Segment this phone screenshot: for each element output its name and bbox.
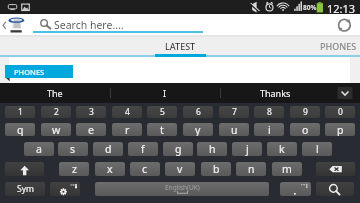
staticText: s	[70, 142, 76, 156]
staticText: 2	[54, 106, 59, 118]
button[interactable]: c	[130, 162, 160, 176]
staticText: o	[302, 123, 309, 136]
staticText: I	[163, 87, 167, 99]
staticText: l	[316, 142, 319, 156]
staticText: 3	[89, 106, 94, 118]
staticText: j	[246, 142, 249, 156]
staticText: p	[337, 123, 344, 136]
staticText: Thanks	[260, 87, 291, 99]
button[interactable]: PHONES	[320, 37, 360, 55]
staticText: y	[195, 123, 201, 136]
button[interactable]: 5	[147, 106, 177, 118]
button[interactable]: k	[267, 142, 297, 156]
button[interactable]: I	[110, 83, 220, 103]
button[interactable]: Thanks	[220, 83, 330, 103]
staticText: PHONES	[14, 67, 45, 77]
button[interactable]: r	[112, 123, 142, 136]
button[interactable]: j	[232, 142, 262, 156]
staticText: i	[268, 123, 271, 136]
button[interactable]: Shift	[5, 162, 44, 176]
staticText: e	[88, 123, 94, 136]
button[interactable]: 4	[112, 106, 142, 118]
button[interactable]: i	[254, 123, 284, 136]
button[interactable]: Settings	[50, 182, 80, 196]
staticText: 80%	[303, 3, 317, 12]
staticText: Sym	[17, 183, 34, 195]
button[interactable]: v	[165, 162, 195, 176]
button[interactable]: 2	[41, 106, 71, 118]
staticText: PHONES	[320, 40, 357, 52]
staticText: 8	[267, 106, 272, 118]
staticText: t	[160, 123, 164, 136]
staticText: u	[231, 123, 238, 136]
button[interactable]: Refresh	[334, 15, 355, 36]
staticText: v	[177, 162, 183, 176]
button[interactable]: 7	[219, 106, 249, 118]
button[interactable]: h	[197, 142, 227, 156]
button[interactable]: g	[163, 142, 193, 156]
button[interactable]: y	[183, 123, 213, 136]
button[interactable]: d	[93, 142, 123, 156]
staticText: r	[125, 123, 130, 136]
button[interactable]: LATEST	[143, 37, 218, 55]
staticText: 7	[232, 106, 237, 118]
staticText: g	[175, 142, 182, 156]
button[interactable]: q	[5, 123, 35, 136]
staticText: 0	[338, 106, 343, 118]
button[interactable]: m	[272, 162, 302, 176]
button[interactable]: s	[58, 142, 88, 156]
button[interactable]: e	[76, 123, 106, 136]
button[interactable]: PHONES	[5, 65, 73, 78]
staticText: c	[142, 162, 148, 176]
staticText: w	[52, 123, 61, 136]
staticText: q	[17, 123, 24, 136]
button[interactable]: o	[290, 123, 320, 136]
button[interactable]: p	[325, 123, 355, 136]
staticText: 5	[160, 106, 165, 118]
button[interactable]: b	[201, 162, 231, 176]
staticText: English(UK)	[165, 183, 200, 192]
button[interactable]: The	[0, 83, 110, 103]
staticText: m	[282, 162, 292, 176]
staticText: The	[47, 87, 63, 99]
button[interactable]: n	[236, 162, 266, 176]
button[interactable]: t	[147, 123, 177, 136]
button[interactable]: 8	[254, 106, 284, 118]
button[interactable]: u	[219, 123, 249, 136]
staticText: 6	[196, 106, 201, 118]
button[interactable]: Back	[0, 17, 12, 29]
button[interactable]: 1	[5, 106, 35, 118]
staticText: 12:13	[327, 1, 356, 15]
button[interactable]: More suggestions	[330, 83, 360, 103]
staticText: n	[248, 162, 255, 176]
button[interactable]: f	[128, 142, 158, 156]
button[interactable]: w	[41, 123, 71, 136]
staticText: k	[279, 142, 285, 156]
staticText: 4	[125, 106, 130, 118]
button[interactable]: 9	[290, 106, 320, 118]
staticText: Search here....	[54, 18, 124, 32]
button[interactable]	[280, 182, 311, 196]
staticText: b	[213, 162, 220, 176]
button[interactable]: Search	[316, 182, 354, 196]
button[interactable]: Backspace	[316, 162, 355, 176]
button[interactable]: Space	[95, 182, 269, 196]
button[interactable]: 6	[183, 106, 213, 118]
staticText: d	[105, 142, 112, 156]
button[interactable]: a	[24, 142, 54, 156]
staticText: 9	[303, 106, 308, 118]
button[interactable]: z	[59, 162, 89, 176]
staticText: 1	[18, 106, 23, 118]
staticText: f	[141, 142, 145, 156]
staticText: z	[72, 162, 77, 176]
button[interactable]: x	[95, 162, 125, 176]
button[interactable]: Sym	[5, 182, 45, 196]
staticText: a	[36, 142, 42, 156]
staticText: x	[107, 162, 113, 176]
button[interactable]: 0	[325, 106, 355, 118]
button[interactable]: l	[302, 142, 332, 156]
button[interactable]: 3	[76, 106, 106, 118]
staticText: h	[209, 142, 216, 156]
staticText: LATEST	[165, 40, 196, 52]
